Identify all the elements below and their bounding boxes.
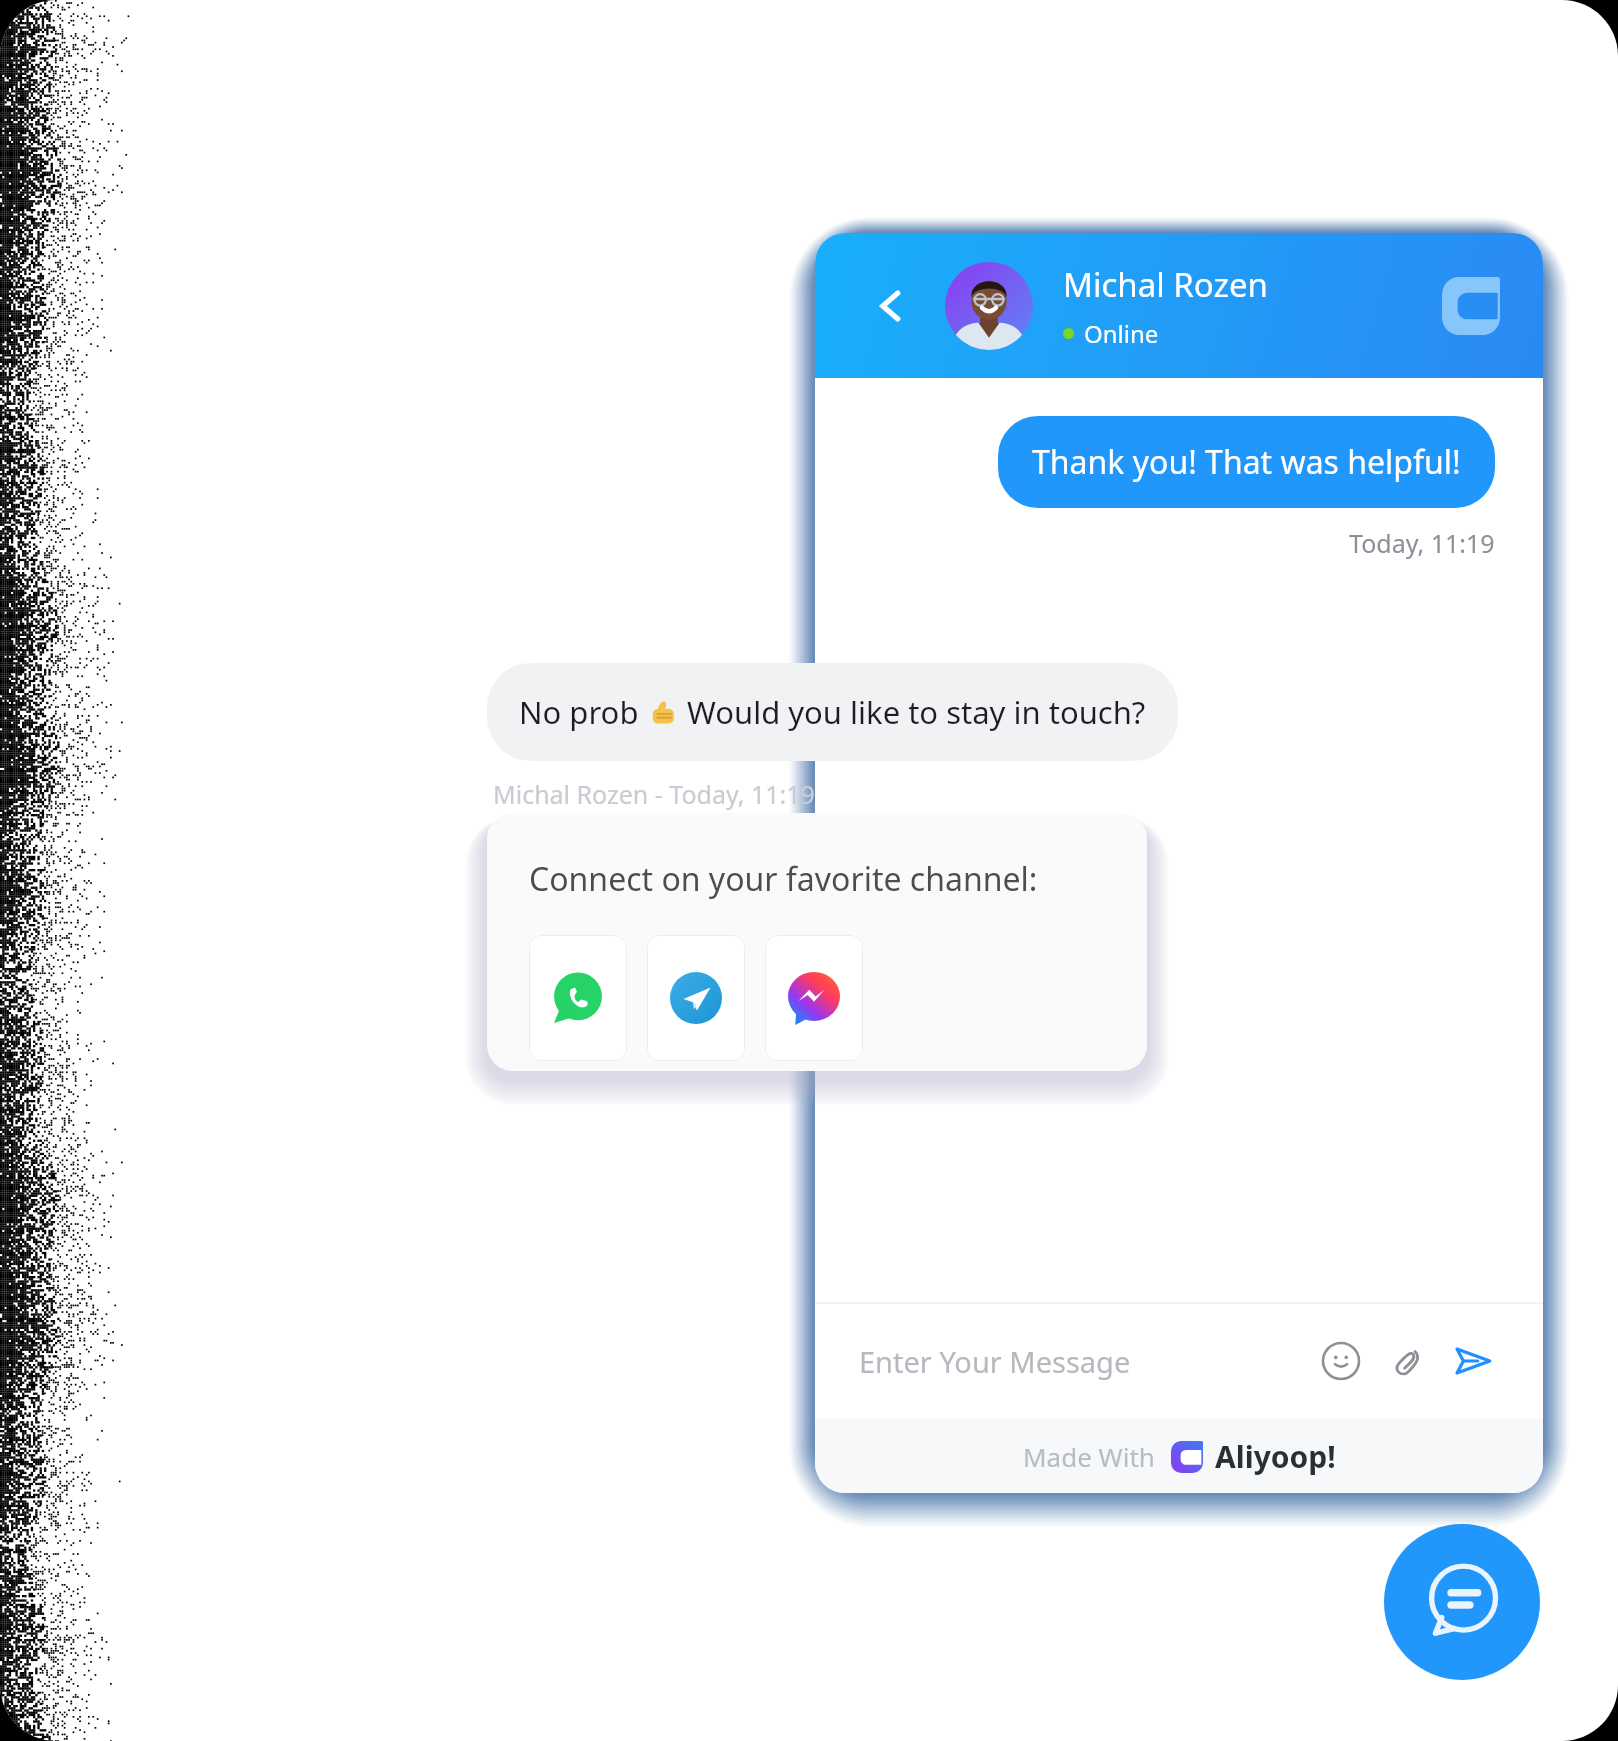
button[interactable]: Back <box>863 278 919 334</box>
button[interactable]: Open chat <box>1384 1524 1540 1680</box>
button[interactable]: Attach file <box>1381 1335 1433 1387</box>
button[interactable]: Telegram <box>647 935 745 1061</box>
button[interactable]: Aliyoop logo <box>1435 270 1507 342</box>
staticText: Enter Your Message <box>859 1342 1131 1381</box>
button[interactable]: Messenger <box>765 935 863 1061</box>
staticText: Michal Rozen <box>1063 262 1268 307</box>
staticText: Made With <box>1023 1439 1155 1474</box>
staticText: Online <box>1084 317 1159 350</box>
staticText: Today, 11:19 <box>1349 526 1495 560</box>
staticText: Connect on your favorite channel: <box>529 857 1038 901</box>
staticText: Aliyoop! <box>1215 1436 1336 1477</box>
button[interactable]: Send <box>1447 1335 1499 1387</box>
button[interactable]: Thank you! That was helpful! <box>998 416 1495 508</box>
button[interactable]: Made With <box>815 1419 1543 1493</box>
button[interactable]: WhatsApp <box>529 935 627 1061</box>
button[interactable]: No prob <box>487 663 1178 761</box>
staticText: Thank you! That was helpful! <box>1032 440 1461 484</box>
staticText: No prob <box>519 691 647 733</box>
staticText: Would you like to stay in touch? <box>679 691 1146 733</box>
button[interactable]: Emoji <box>1315 1335 1367 1387</box>
staticText: Michal Rozen - Today, 11:19 <box>493 777 815 811</box>
